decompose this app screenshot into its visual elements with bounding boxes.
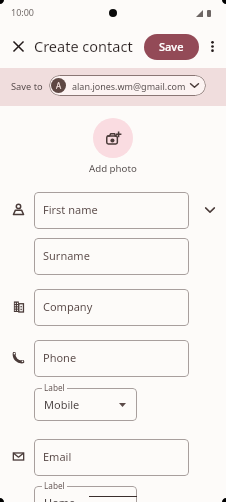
- staticText: Mobile: [44, 397, 80, 412]
- staticText: Phone: [43, 350, 77, 365]
- staticText: alan.jones.wm@gmail.com: [72, 80, 186, 92]
- button[interactable]: Close: [4, 32, 33, 61]
- button[interactable]: Save: [144, 34, 199, 60]
- button[interactable]: More options: [198, 32, 226, 60]
- button[interactable]: Home: [34, 486, 137, 502]
- staticText: Home: [44, 495, 76, 502]
- staticText: A: [56, 80, 62, 91]
- staticText: Email: [43, 449, 72, 464]
- staticText: Save to: [11, 80, 43, 93]
- button[interactable]: Email: [34, 439, 189, 476]
- button[interactable]: A: [49, 75, 206, 96]
- staticText: Surname: [43, 248, 90, 263]
- button[interactable]: Mobile: [34, 388, 137, 421]
- staticText: Save: [159, 39, 184, 54]
- staticText: First name: [43, 202, 98, 217]
- staticText: Create contact: [34, 36, 133, 56]
- button[interactable]: Add photo: [93, 118, 133, 158]
- staticText: Label: [44, 382, 65, 393]
- button[interactable]: Expand name fields: [198, 198, 222, 222]
- staticText: 10:00: [11, 6, 35, 18]
- staticText: Label: [44, 480, 65, 491]
- button[interactable]: Surname: [34, 238, 189, 275]
- staticText: Company: [43, 299, 93, 314]
- button[interactable]: Company: [34, 289, 189, 326]
- button[interactable]: Phone: [34, 340, 189, 377]
- button[interactable]: First name: [34, 192, 189, 229]
- staticText: Add photo: [89, 162, 137, 175]
